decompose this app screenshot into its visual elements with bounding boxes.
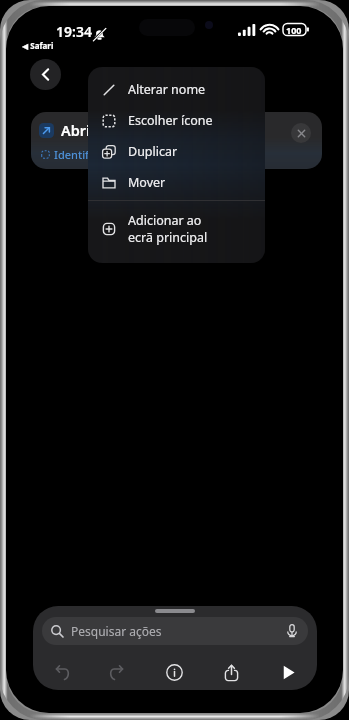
button[interactable]: Back <box>30 59 61 90</box>
other: Silent mode <box>93 28 106 41</box>
staticText: Mover <box>128 174 166 191</box>
staticText: Abrir URLs <box>61 120 136 140</box>
other: Dictate <box>285 624 299 638</box>
staticText: Pesquisar ações <box>71 623 162 639</box>
button[interactable]: Undo <box>33 658 89 686</box>
staticText: ◀ Safari <box>22 40 54 51</box>
button[interactable]: Share <box>203 658 260 686</box>
staticText: Duplicar <box>128 143 178 160</box>
button[interactable]: Mover <box>88 167 265 198</box>
staticText: Identificador <box>54 147 122 162</box>
staticText: Alterar nome <box>128 81 206 98</box>
button[interactable]: Adicionar ao ecrã principal <box>88 206 265 253</box>
staticText: 100 <box>286 24 302 36</box>
button[interactable]: Abrir URLs <box>31 112 322 169</box>
button[interactable]: Run <box>260 658 317 686</box>
button[interactable]: Duplicar <box>88 136 265 167</box>
button[interactable]: Pesquisar ações <box>42 617 308 645</box>
button[interactable]: Info <box>146 658 203 686</box>
button[interactable]: Escolher ícone <box>88 105 265 136</box>
button[interactable]: Alterar nome <box>88 74 265 105</box>
staticText: 19:34 <box>56 22 92 41</box>
button[interactable]: Redo <box>89 658 146 686</box>
staticText: Adicionar ao ecrã principal <box>128 212 208 245</box>
button[interactable]: Close <box>291 123 311 143</box>
staticText: Escolher ícone <box>128 112 213 129</box>
